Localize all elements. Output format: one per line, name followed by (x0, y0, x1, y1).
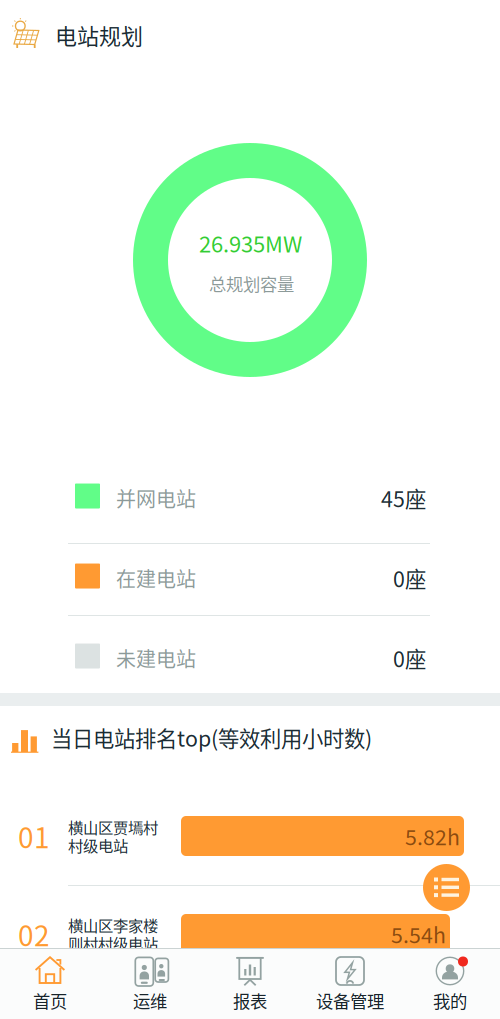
button[interactable]: 02 (18, 914, 450, 954)
staticText: 5.54h (391, 919, 446, 949)
staticText: 我的 (433, 988, 467, 1013)
staticText: 运维 (133, 988, 167, 1013)
staticText: 并网电站 (116, 483, 196, 512)
button[interactable]: 报表 (200, 948, 300, 1019)
button[interactable]: 设备管理 (300, 948, 400, 1019)
button[interactable]: 01 (18, 816, 464, 856)
staticText: 未建电站 (116, 643, 196, 672)
staticText: 横山区贾墕村 (68, 816, 158, 838)
staticText: 总规划容量 (209, 271, 294, 296)
staticText: 26.935MW (199, 227, 302, 259)
staticText: 设备管理 (316, 988, 384, 1013)
staticText: 村级电站 (68, 834, 128, 856)
staticText: 02 (18, 914, 50, 954)
staticText: 首页 (33, 988, 67, 1013)
button[interactable]: 我的 (400, 948, 500, 1019)
staticText: 0座 (393, 643, 426, 673)
staticText: 则村村级电站 (68, 932, 158, 954)
staticText: 5.82h (405, 821, 460, 851)
button[interactable]: 在建电站 (75, 536, 426, 616)
staticText: 01 (18, 816, 50, 856)
button[interactable]: 运维 (100, 948, 200, 1019)
staticText: 电站规划 (55, 19, 143, 51)
staticText: 横山区李家楼 (68, 914, 158, 936)
staticText: 45座 (381, 483, 426, 513)
staticText: 0座 (393, 563, 426, 593)
staticText: 在建电站 (116, 563, 196, 592)
button[interactable]: 并网电站 (75, 456, 426, 536)
staticText: 当日电站排名top(等效利用小时数) (51, 722, 372, 753)
staticText: 报表 (233, 988, 267, 1013)
button[interactable]: 电站列表 (423, 864, 470, 911)
button[interactable]: 未建电站 (75, 616, 426, 696)
button[interactable]: 首页 (0, 948, 100, 1019)
